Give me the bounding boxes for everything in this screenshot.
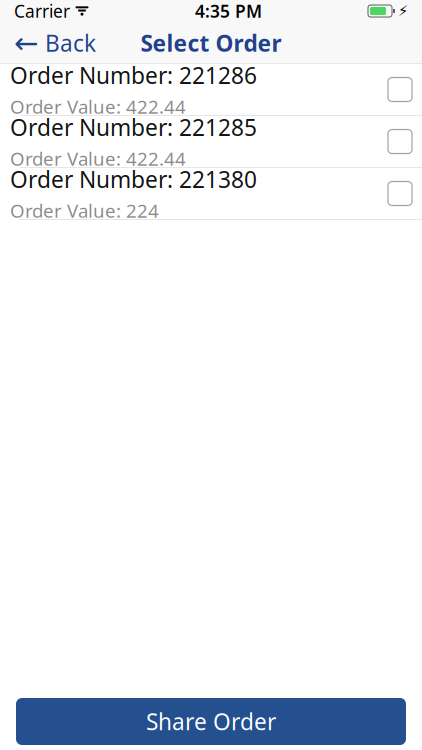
staticText: Carrier	[14, 0, 70, 22]
button[interactable]: Order Number: 221285	[0, 116, 422, 167]
button[interactable]: Share Order	[16, 698, 406, 745]
staticText: Order Value: 422.44	[10, 146, 186, 171]
staticText: Order Value: 224	[10, 198, 159, 223]
staticText: Select Order	[140, 28, 281, 58]
staticText: Order Number: 221285	[10, 112, 257, 142]
staticText: Order Value: 422.44	[10, 94, 186, 119]
button[interactable]: Order Number: 221380	[0, 168, 422, 219]
staticText: ←	[14, 26, 39, 60]
staticText: Order Number: 221286	[10, 60, 257, 90]
staticText: 4:35 PM	[195, 0, 262, 22]
staticText: ⚡︎	[398, 3, 408, 19]
button[interactable]: Order Number: 221286	[0, 64, 422, 115]
staticText: Back	[45, 28, 96, 58]
staticText: Share Order	[146, 706, 276, 736]
button[interactable]: ←	[0, 22, 110, 64]
staticText: Order Number: 221380	[10, 164, 257, 194]
